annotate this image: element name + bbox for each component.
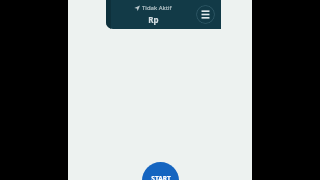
other: Location status bbox=[134, 5, 140, 11]
button[interactable]: START bbox=[142, 162, 179, 180]
button[interactable]: Location status bbox=[134, 4, 172, 12]
button[interactable]: Menu bbox=[196, 5, 215, 24]
staticText: START bbox=[151, 174, 171, 180]
staticText: Rp bbox=[148, 14, 159, 25]
staticText: Tidak Aktif bbox=[142, 4, 172, 12]
